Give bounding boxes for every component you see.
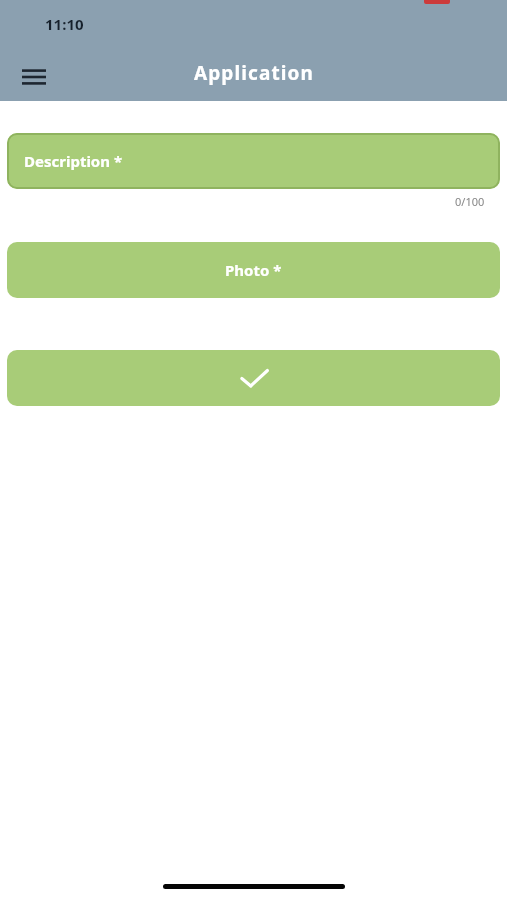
staticText: Photo * [225, 260, 282, 280]
staticText: 0/100 [455, 194, 485, 209]
button[interactable]: Photo * [7, 242, 500, 298]
staticText: Description * [24, 151, 123, 171]
button[interactable]: Submit [7, 350, 500, 406]
staticText: Application [194, 60, 314, 86]
button[interactable]: Description * [7, 133, 500, 189]
staticText: 11:10 [45, 14, 84, 34]
button[interactable]: Open navigation menu [10, 53, 58, 101]
